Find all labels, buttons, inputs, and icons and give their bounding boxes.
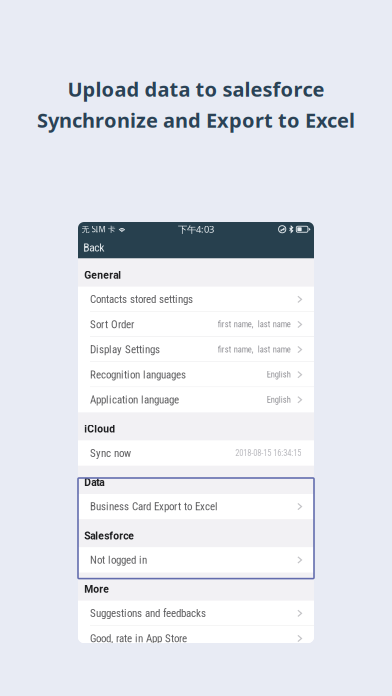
staticText: Sort Order <box>90 318 134 331</box>
button[interactable]: Back <box>78 236 114 258</box>
button[interactable]: Application language <box>78 387 314 412</box>
staticText: Upload data to salesforce <box>67 76 324 102</box>
button[interactable]: Sync now <box>78 441 314 466</box>
staticText: Application language <box>90 393 179 406</box>
button[interactable]: Business Card Export to Excel <box>78 494 314 519</box>
staticText: iCloud <box>84 423 115 435</box>
button[interactable]: Suggestions and feedbacks <box>78 601 314 626</box>
button[interactable]: Sort Order <box>78 312 314 337</box>
staticText: Recognition languages <box>90 368 186 381</box>
staticText: Suggestions and feedbacks <box>90 607 206 620</box>
staticText: Synchronize and Export to Excel <box>37 107 355 133</box>
button[interactable]: Contacts stored settings <box>78 287 314 312</box>
staticText: Salesforce <box>84 530 134 542</box>
button[interactable]: Display Settings <box>78 337 314 362</box>
staticText: English <box>267 370 291 380</box>
staticText: Data <box>84 476 104 488</box>
staticText: first name, last name <box>218 319 291 329</box>
staticText: Display Settings <box>90 343 160 356</box>
staticText: first name, last name <box>218 344 291 354</box>
staticText: Good, rate in App Store <box>90 632 187 645</box>
staticText: 无 SIM 卡 <box>82 224 116 234</box>
staticText: Business Card Export to Excel <box>90 500 218 513</box>
staticText: 2018-08-15 16:34:15 <box>235 448 301 458</box>
staticText: General <box>84 269 121 281</box>
button[interactable]: Good, rate in App Store <box>78 626 314 651</box>
staticText: Back <box>83 241 104 254</box>
staticText: Not logged in <box>90 553 147 566</box>
staticText: More <box>84 583 109 595</box>
staticText: Sync now <box>90 447 131 459</box>
staticText: 下午4:03 <box>178 223 214 235</box>
button[interactable]: Recognition languages <box>78 362 314 387</box>
staticText: English <box>267 395 291 405</box>
button[interactable]: Not logged in <box>78 547 314 572</box>
staticText: Contacts stored settings <box>90 293 193 306</box>
